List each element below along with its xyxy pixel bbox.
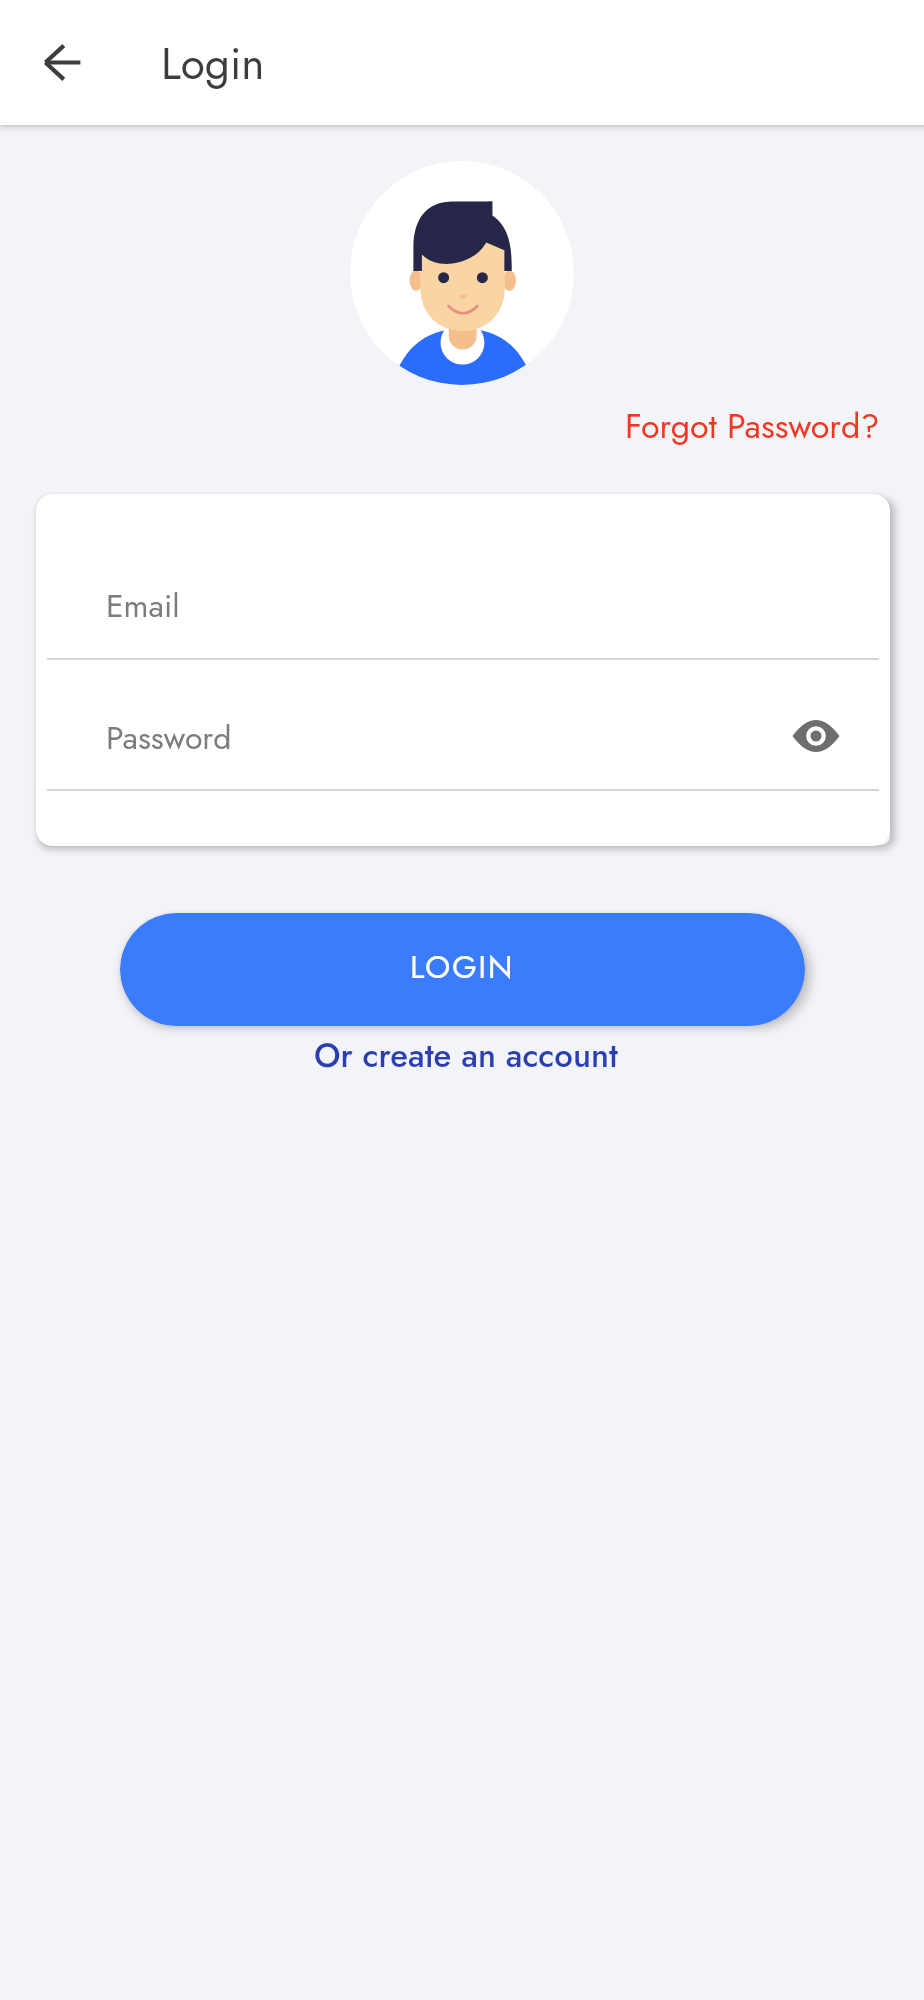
button[interactable]: LOGIN (120, 913, 805, 1026)
button[interactable]: Password (47, 660, 879, 789)
button[interactable]: Back (26, 26, 98, 98)
button[interactable]: Forgot Password? (612, 395, 893, 457)
staticText: Forgot Password? (625, 402, 880, 451)
button[interactable]: Email (47, 532, 879, 658)
button[interactable]: Show password (786, 706, 846, 766)
staticText: LOGIN (410, 944, 515, 990)
staticText: Or create an account (314, 1032, 618, 1080)
staticText: Email (106, 583, 180, 629)
staticText: Login (161, 32, 265, 96)
staticText: Password (106, 715, 232, 761)
button[interactable]: Or create an account (300, 1025, 632, 1087)
